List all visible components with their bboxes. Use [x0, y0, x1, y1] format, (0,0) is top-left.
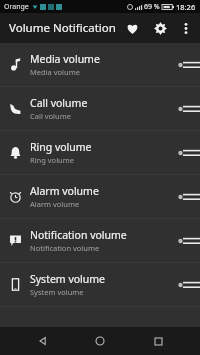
button[interactable]: More options — [174, 16, 198, 40]
staticText: Media volume — [30, 67, 80, 77]
staticText: Ring volume — [30, 155, 74, 165]
button[interactable]: Alarm volume — [0, 175, 200, 218]
staticText: Orange — [4, 2, 29, 12]
button[interactable]: Favorite — [118, 14, 146, 42]
button[interactable]: Media volume — [0, 43, 200, 86]
staticText: Alarm volume — [30, 199, 80, 209]
staticText: System volume — [30, 272, 106, 286]
staticText: Call volume — [30, 111, 71, 121]
button[interactable]: Home — [85, 327, 115, 355]
button[interactable]: Ring volume — [0, 131, 200, 174]
staticText: Volume Notification — [9, 20, 116, 36]
staticText: 18:26 — [176, 2, 196, 12]
button[interactable]: Settings — [146, 14, 174, 42]
button[interactable]: Call volume — [0, 87, 200, 130]
button[interactable]: Recent apps — [143, 327, 173, 355]
staticText: Ring volume — [30, 140, 92, 154]
button[interactable]: Back — [28, 327, 58, 355]
staticText: Media volume — [30, 52, 100, 66]
button[interactable]: Notification volume — [0, 219, 200, 262]
staticText: 69 % — [144, 2, 160, 12]
button[interactable]: System volume — [0, 263, 200, 306]
staticText: Call volume — [30, 96, 88, 110]
staticText: System volume — [30, 287, 84, 297]
staticText: Notification volume — [30, 228, 127, 242]
staticText: Notification volume — [30, 243, 100, 253]
staticText: Alarm volume — [30, 184, 99, 198]
